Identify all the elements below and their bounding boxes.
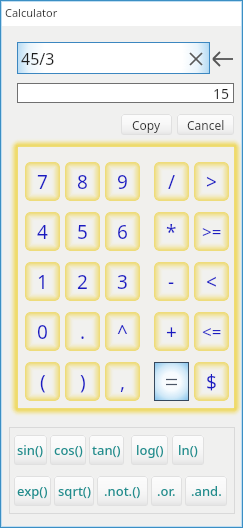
- staticText: Copy: [132, 117, 161, 133]
- staticText: +: [166, 319, 177, 345]
- button[interactable]: .: [65, 312, 100, 351]
- button[interactable]: *: [154, 212, 189, 251]
- staticText: ): [80, 369, 86, 395]
- button[interactable]: sin(): [14, 435, 47, 465]
- button[interactable]: +: [154, 312, 189, 351]
- button[interactable]: Copy: [121, 114, 172, 135]
- button[interactable]: Cancel: [177, 114, 234, 135]
- button[interactable]: Clear text: [187, 50, 205, 68]
- staticText: sin(): [17, 441, 44, 459]
- staticText: .not.(): [104, 482, 141, 500]
- button[interactable]: [154, 362, 189, 401]
- staticText: -: [168, 269, 175, 295]
- staticText: 1: [37, 269, 48, 295]
- button[interactable]: .or.: [151, 476, 182, 506]
- button[interactable]: 4: [25, 212, 60, 251]
- button[interactable]: .not.(): [97, 476, 148, 506]
- staticText: Calculator: [5, 5, 58, 20]
- staticText: 7: [37, 169, 48, 195]
- staticText: .or.: [157, 482, 176, 500]
- staticText: cos(): [54, 441, 83, 459]
- staticText: >: [206, 169, 217, 195]
- button[interactable]: cos(): [50, 435, 86, 465]
- button[interactable]: 15: [17, 83, 234, 103]
- staticText: 8: [77, 169, 88, 195]
- button[interactable]: ,: [105, 362, 140, 401]
- staticText: 2: [77, 269, 88, 295]
- button[interactable]: 8: [65, 162, 100, 201]
- staticText: tan(): [92, 441, 121, 459]
- staticText: 0: [37, 319, 48, 345]
- button[interactable]: ln(): [172, 435, 204, 465]
- staticText: sqrt(): [58, 482, 91, 500]
- button[interactable]: log(): [131, 435, 168, 465]
- button[interactable]: .and.: [185, 476, 227, 506]
- button[interactable]: 45/3: [17, 42, 210, 74]
- staticText: Cancel: [187, 117, 225, 133]
- button[interactable]: (: [25, 362, 60, 401]
- staticText: ,: [120, 369, 126, 395]
- button[interactable]: >=: [194, 212, 229, 251]
- staticText: 3: [117, 269, 128, 295]
- button[interactable]: 3: [105, 262, 140, 301]
- button[interactable]: tan(): [89, 435, 124, 465]
- staticText: .: [80, 319, 86, 345]
- button[interactable]: <=: [194, 312, 229, 351]
- staticText: 4: [37, 219, 48, 245]
- button[interactable]: <: [194, 262, 229, 301]
- button[interactable]: exp(): [14, 476, 51, 506]
- staticText: exp(): [17, 482, 48, 500]
- button[interactable]: 6: [105, 212, 140, 251]
- button[interactable]: -: [154, 262, 189, 301]
- button[interactable]: ): [65, 362, 100, 401]
- staticText: log(): [136, 441, 164, 459]
- button[interactable]: 7: [25, 162, 60, 201]
- staticText: *: [166, 219, 177, 245]
- staticText: <=: [202, 320, 222, 343]
- button[interactable]: /: [154, 162, 189, 201]
- staticText: 45/3: [21, 48, 55, 70]
- staticText: ^: [117, 319, 128, 345]
- staticText: 5: [77, 219, 88, 245]
- button[interactable]: $: [194, 362, 229, 401]
- button[interactable]: 2: [65, 262, 100, 301]
- staticText: <: [206, 269, 217, 295]
- button[interactable]: >: [194, 162, 229, 201]
- staticText: /: [168, 169, 176, 195]
- button[interactable]: Back: [212, 48, 234, 70]
- button[interactable]: 1: [25, 262, 60, 301]
- button[interactable]: ^: [105, 312, 140, 351]
- staticText: 15: [213, 84, 230, 103]
- staticText: 9: [117, 169, 128, 195]
- staticText: ln(): [178, 441, 198, 459]
- staticText: 6: [117, 219, 128, 245]
- button[interactable]: 0: [25, 312, 60, 351]
- button[interactable]: 5: [65, 212, 100, 251]
- button[interactable]: sqrt(): [54, 476, 94, 506]
- staticText: (: [40, 369, 46, 395]
- staticText: $: [206, 369, 217, 395]
- staticText: .and.: [191, 482, 222, 500]
- staticText: >=: [202, 220, 222, 243]
- button[interactable]: 9: [105, 162, 140, 201]
